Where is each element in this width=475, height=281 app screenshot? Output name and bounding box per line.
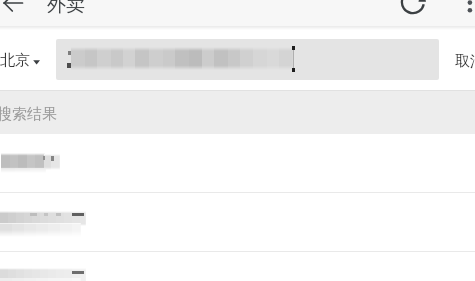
button[interactable]: More options xyxy=(456,0,475,14)
button[interactable] xyxy=(0,134,475,192)
staticText: 搜索结果 xyxy=(0,105,57,124)
button[interactable] xyxy=(56,39,439,80)
button[interactable] xyxy=(0,252,475,281)
staticText: 外卖 xyxy=(47,0,85,17)
button[interactable]: Back xyxy=(0,0,28,17)
button[interactable] xyxy=(0,193,475,251)
staticText: 北京 xyxy=(0,51,30,70)
button[interactable]: 取消 xyxy=(455,52,475,71)
button[interactable]: Refresh xyxy=(398,0,428,16)
button[interactable]: 北京 xyxy=(0,45,52,75)
